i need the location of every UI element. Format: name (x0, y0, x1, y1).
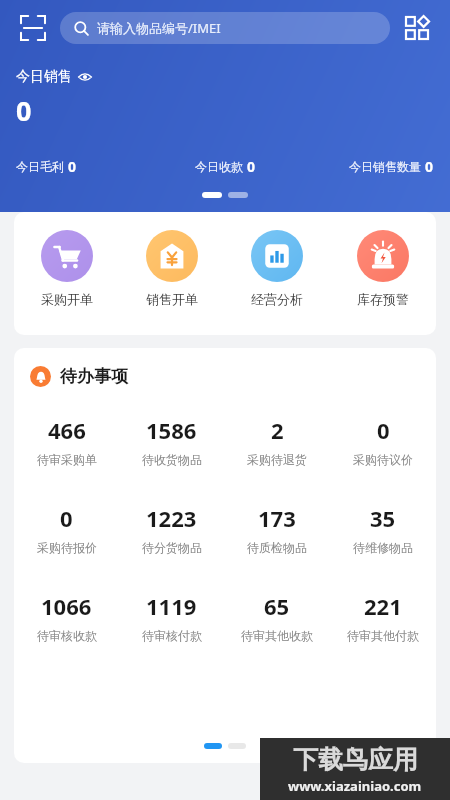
button[interactable]: 466 (14, 413, 119, 469)
button[interactable]: 今日销售 (16, 68, 92, 86)
button[interactable]: 库存预警 (330, 228, 436, 309)
staticText: 今日毛利 (16, 159, 64, 174)
button[interactable]: 1586 (119, 413, 224, 469)
button[interactable]: 2 (224, 413, 330, 469)
button[interactable]: 1066 (14, 589, 119, 645)
staticText: 库存预警 (357, 291, 409, 307)
button[interactable]: Apps (398, 9, 436, 47)
button[interactable]: 0 (330, 413, 436, 469)
staticText: 销售开单 (146, 291, 198, 307)
staticText: 0 (60, 503, 73, 533)
staticText: 待审核收款 (37, 628, 97, 643)
staticText: 今日收款 (195, 159, 243, 174)
staticText: 1066 (41, 591, 92, 621)
button[interactable]: 35 (330, 501, 436, 557)
button[interactable]: 销售开单 (119, 228, 224, 309)
staticText: 今日销售 (16, 68, 72, 86)
button[interactable]: 65 (224, 589, 330, 645)
staticText: 待审其他收款 (241, 628, 313, 643)
button[interactable]: 经营分析 (224, 228, 330, 309)
staticText: 采购待议价 (353, 452, 413, 467)
staticText: 65 (264, 591, 290, 621)
staticText: 0 (68, 157, 77, 176)
staticText: 0 (425, 157, 434, 176)
button[interactable]: Scan code (14, 9, 52, 47)
button[interactable]: 1119 (119, 589, 224, 645)
staticText: 待维修物品 (353, 540, 413, 555)
button[interactable]: 173 (224, 501, 330, 557)
staticText: 35 (370, 503, 396, 533)
button[interactable]: 221 (330, 589, 436, 645)
staticText: www.xiazainiao.com (288, 777, 422, 795)
staticText: 221 (364, 591, 402, 621)
staticText: 待收货物品 (142, 452, 202, 467)
staticText: 1586 (146, 415, 197, 445)
button[interactable]: 1223 (119, 501, 224, 557)
staticText: 待质检物品 (247, 540, 307, 555)
staticText: 今日销售数量 (349, 159, 421, 174)
staticText: 2 (271, 415, 284, 445)
button[interactable]: 0 (14, 501, 119, 557)
staticText: 待分货物品 (142, 540, 202, 555)
staticText: 466 (48, 415, 86, 445)
staticText: 0 (16, 92, 32, 129)
staticText: 采购开单 (41, 291, 93, 307)
button[interactable]: 请输入物品编号/IMEI (60, 12, 390, 44)
staticText: 待审其他付款 (347, 628, 419, 643)
staticText: 下载鸟应用 (293, 744, 418, 775)
staticText: 待办事项 (60, 366, 128, 387)
staticText: 经营分析 (251, 291, 303, 307)
staticText: 采购待报价 (37, 540, 97, 555)
staticText: 173 (258, 503, 296, 533)
staticText: 0 (247, 157, 256, 176)
staticText: 采购待退货 (247, 452, 307, 467)
staticText: 待审采购单 (37, 452, 97, 467)
staticText: 1119 (146, 591, 197, 621)
staticText: 请输入物品编号/IMEI (97, 19, 221, 37)
staticText: 0 (377, 415, 390, 445)
staticText: 待审核付款 (142, 628, 202, 643)
staticText: 1223 (146, 503, 197, 533)
button[interactable]: 采购开单 (14, 228, 119, 309)
